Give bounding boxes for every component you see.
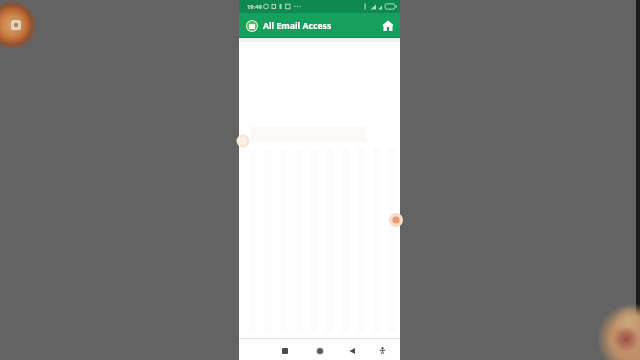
button[interactable] — [246, 20, 258, 32]
button[interactable] — [380, 18, 396, 34]
staticText: 19:49 — [247, 3, 262, 11]
button[interactable] — [345, 344, 359, 358]
button[interactable] — [313, 344, 327, 358]
button[interactable] — [278, 344, 292, 358]
staticText: All Email Access — [263, 20, 332, 32]
button[interactable] — [376, 344, 389, 357]
